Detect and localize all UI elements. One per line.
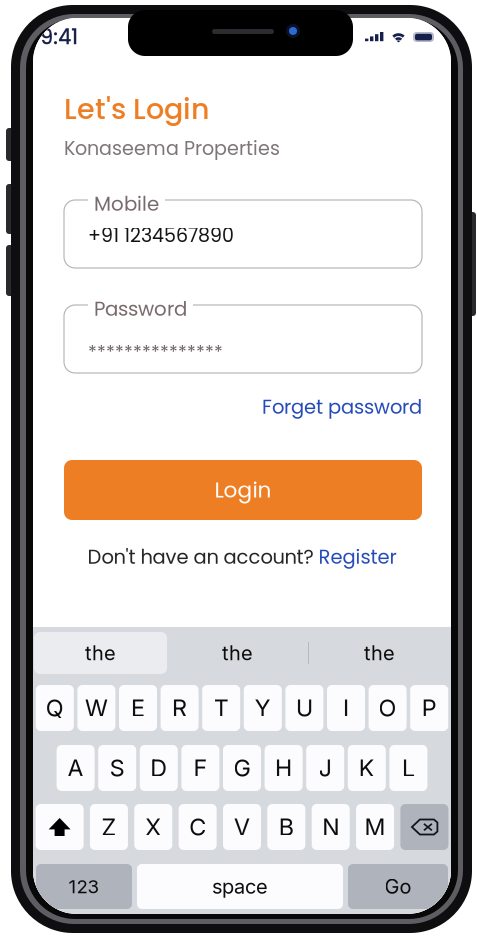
button[interactable]: P [410,685,448,731]
button[interactable]: C [179,804,217,850]
button[interactable]: Register [318,543,396,571]
button[interactable]: space [137,864,343,909]
staticText: G [233,754,250,782]
staticText: the [85,641,116,665]
staticText: the [364,641,395,665]
staticText: P [422,694,437,722]
button[interactable]: G [223,745,261,791]
staticText: R [172,694,187,722]
button[interactable]: L [389,745,427,791]
button[interactable]: H [265,745,303,791]
button[interactable]: Q [36,685,74,731]
staticText: V [234,813,250,841]
staticText: Go [384,874,411,899]
button[interactable]: Forget password [64,396,422,418]
staticText: F [193,754,207,782]
button[interactable]: B [267,804,305,850]
staticText: O [379,694,397,722]
staticText: C [189,813,206,841]
staticText: Y [255,694,271,722]
staticText: B [279,813,294,841]
button[interactable]: A [57,745,95,791]
button[interactable]: U [285,685,323,731]
staticText: Don't have an account? [87,543,318,571]
staticText: Let's Login [64,89,210,129]
staticText: K [359,754,375,782]
button[interactable]: F [181,745,219,791]
staticText: D [150,754,167,782]
staticText: Z [101,813,116,841]
button[interactable]: Go [348,864,448,909]
staticText: H [275,754,292,782]
staticText: U [296,694,313,722]
button[interactable]: Login [64,460,422,520]
button[interactable]: I [327,685,365,731]
staticText: Q [46,694,64,722]
staticText: L [402,754,415,782]
staticText: E [131,694,145,722]
button[interactable]: W [77,685,115,731]
button[interactable]: 123 [36,864,132,909]
button[interactable]: R [161,685,199,731]
button[interactable]: Delete [400,804,448,850]
staticText: J [319,754,332,782]
staticText: Konaseema Properties [64,135,280,162]
staticText: 123 [68,875,99,898]
button[interactable]: +91 1234567890 [64,200,422,268]
button[interactable]: *************** [64,305,422,373]
staticText: T [214,694,229,722]
button[interactable]: K [348,745,386,791]
staticText: +91 1234567890 [88,222,234,248]
staticText: the [222,641,253,665]
staticText: M [365,813,386,841]
staticText: space [212,874,268,899]
staticText: *************** [88,339,223,364]
staticText: Forget password [262,393,422,421]
staticText: N [322,813,339,841]
button[interactable]: V [223,804,261,850]
staticText: Login [214,475,271,505]
staticText: S [110,754,125,782]
staticText: I [343,694,349,722]
button[interactable]: E [119,685,157,731]
button[interactable]: J [306,745,344,791]
button[interactable]: O [369,685,407,731]
staticText: X [145,813,161,841]
button[interactable]: D [140,745,178,791]
button[interactable]: Y [244,685,282,731]
button[interactable]: X [134,804,172,850]
staticText: 9:41 [40,22,78,51]
button[interactable]: N [312,804,350,850]
staticText: Password [94,295,187,323]
staticText: Mobile [94,190,159,218]
button[interactable]: Shift [36,804,84,850]
button[interactable]: T [202,685,240,731]
staticText: A [68,754,84,782]
button[interactable]: Z [90,804,128,850]
staticText: W [85,694,108,722]
button[interactable]: M [356,804,394,850]
button[interactable]: S [98,745,136,791]
staticText: Register [318,543,396,571]
